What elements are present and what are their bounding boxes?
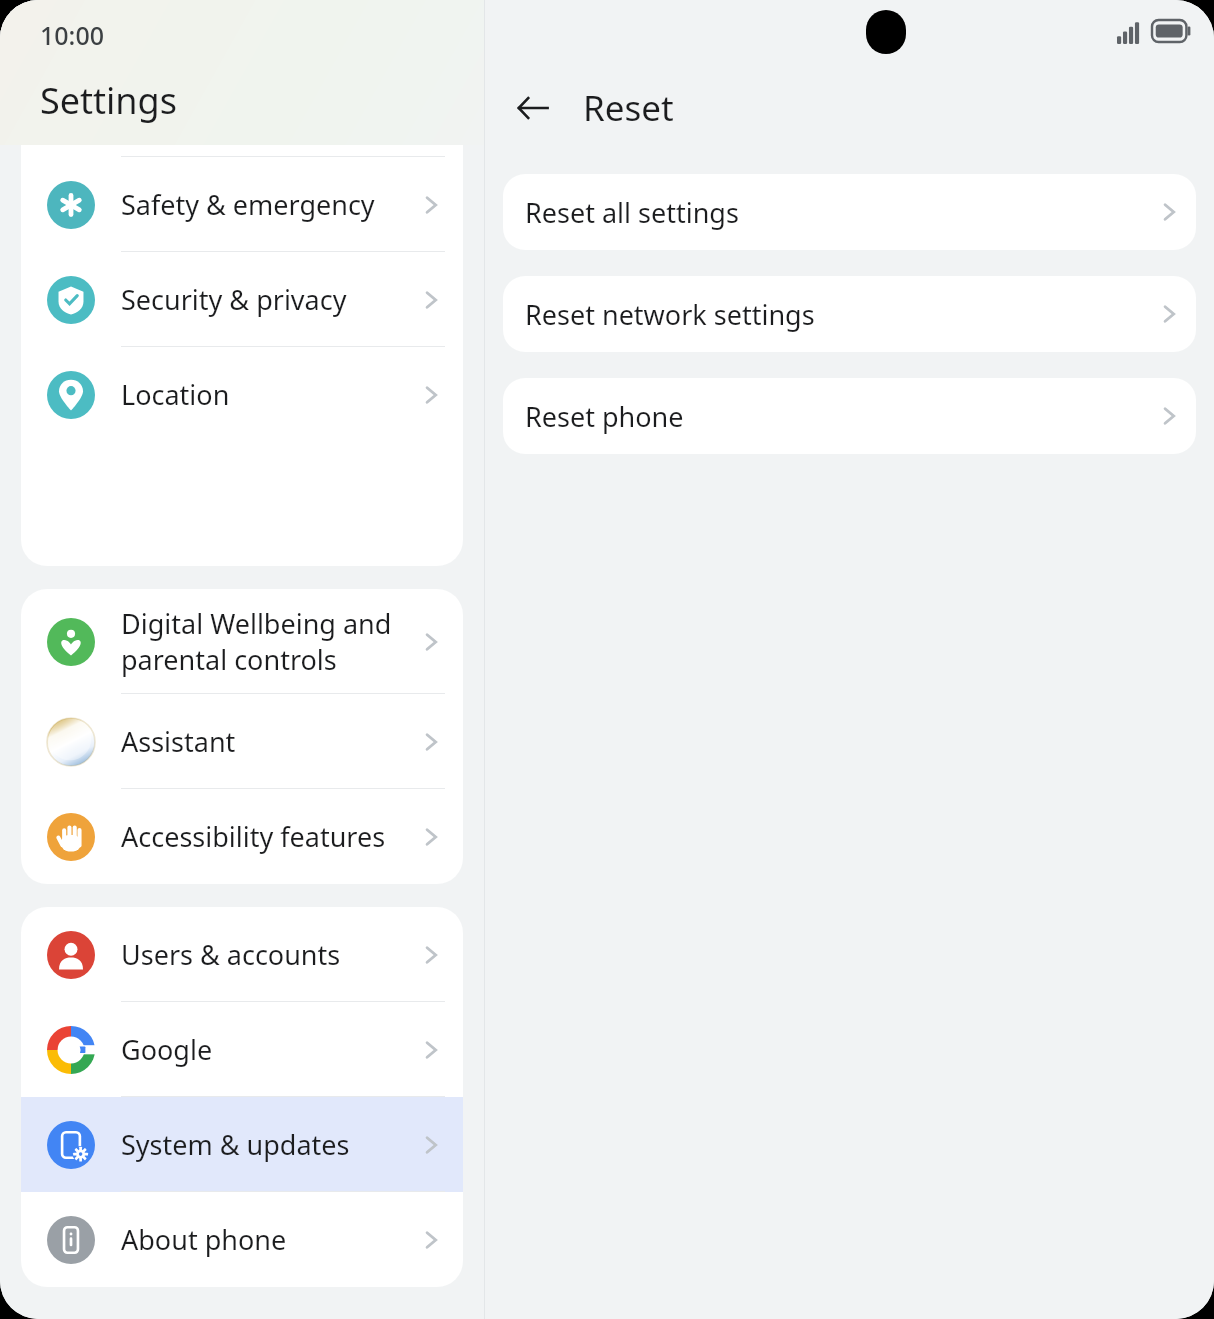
staticText: System & updates xyxy=(121,1126,350,1163)
staticText: Reset xyxy=(583,84,674,132)
staticText: 10:00 xyxy=(40,18,105,52)
button[interactable]: Users & accounts xyxy=(21,907,463,1002)
staticText: Accessibility features xyxy=(121,818,386,855)
staticText: About phone xyxy=(121,1221,287,1258)
staticText: Users & accounts xyxy=(121,936,341,973)
button[interactable]: Reset phone xyxy=(503,378,1196,454)
staticText: Reset network settings xyxy=(525,296,1142,333)
button[interactable]: Storage xyxy=(21,62,463,157)
button[interactable]: Accessibility features xyxy=(21,789,463,884)
staticText: Reset phone xyxy=(525,398,1142,435)
staticText: Safety & emergency xyxy=(121,186,375,223)
staticText: Reset all settings xyxy=(525,194,1142,231)
button[interactable]: About phone xyxy=(21,1192,463,1287)
button[interactable]: Digital Wellbeing and parental controls xyxy=(21,589,463,694)
button[interactable]: Reset all settings xyxy=(503,174,1196,250)
button[interactable]: Safety & emergency xyxy=(21,157,463,252)
button[interactable]: Security & privacy xyxy=(21,252,463,347)
staticText: Digital Wellbeing and parental controls xyxy=(121,605,392,678)
button[interactable]: Back xyxy=(505,80,561,136)
button[interactable]: Reset network settings xyxy=(503,276,1196,352)
staticText: Storage xyxy=(121,91,220,128)
button[interactable]: Location xyxy=(21,347,463,442)
staticText: Security & privacy xyxy=(121,281,347,318)
button[interactable]: Assistant xyxy=(21,694,463,789)
staticText: Google xyxy=(121,1031,213,1068)
button[interactable]: System & updates xyxy=(21,1097,463,1192)
staticText: Settings xyxy=(40,76,177,125)
staticText: Location xyxy=(121,376,230,413)
staticText: Assistant xyxy=(121,723,236,760)
button[interactable]: Google xyxy=(21,1002,463,1097)
